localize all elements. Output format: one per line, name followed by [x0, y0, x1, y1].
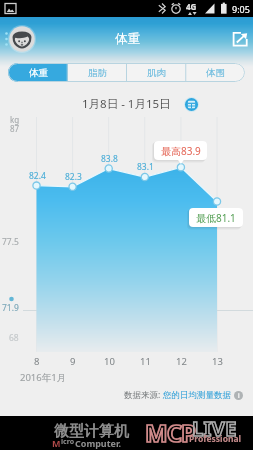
staticText: 体重 — [29, 67, 48, 79]
button[interactable]: 肌肉 — [127, 63, 186, 82]
staticText: MCP — [145, 416, 195, 449]
staticText: 4G — [186, 1, 197, 12]
staticText: 9:05 — [232, 3, 250, 15]
staticText: 11 — [140, 355, 151, 368]
staticText: 体重 — [115, 31, 140, 47]
staticText: 9 — [70, 355, 76, 368]
staticText: 13 — [212, 355, 223, 368]
button[interactable]: Share — [232, 31, 248, 47]
staticText: icro — [61, 437, 75, 447]
staticText: 最低81.1 — [196, 211, 236, 225]
button[interactable]: 体重 — [8, 63, 68, 82]
button[interactable]: Info — [234, 391, 243, 400]
staticText: 83.1 — [137, 161, 154, 173]
staticText: 体围 — [206, 67, 225, 79]
staticText: 12 — [176, 355, 187, 368]
staticText: Professional — [189, 433, 242, 445]
staticText: 肌肉 — [147, 67, 166, 79]
staticText: 83.8 — [101, 153, 118, 165]
button[interactable]: Pick date — [184, 97, 199, 112]
staticText: 87 — [10, 123, 20, 134]
button[interactable]: 体围 — [186, 63, 245, 82]
staticText: 8 — [34, 355, 40, 368]
button[interactable]: 您的日均测量数据 — [163, 390, 231, 401]
staticText: 微型计算机 — [54, 422, 129, 441]
staticText: 最高83.9 — [161, 144, 201, 158]
staticText: 数据来源: — [124, 389, 163, 401]
button[interactable]: 脂肪 — [68, 63, 127, 82]
staticText: 脂肪 — [88, 67, 107, 79]
staticText: M — [52, 437, 61, 449]
staticText: 82.4 — [29, 170, 46, 182]
button[interactable]: Profile — [8, 25, 36, 53]
staticText: 10 — [104, 355, 115, 368]
staticText: Computer. — [75, 437, 122, 449]
staticText: 2016年1月 — [20, 371, 67, 384]
staticText: 82.3 — [65, 171, 82, 183]
staticText: LIVE — [192, 415, 237, 442]
staticText: kg — [10, 114, 20, 125]
staticText: 71.9 — [2, 302, 19, 314]
staticText: 77.5 — [2, 236, 19, 248]
staticText: 68 — [9, 332, 19, 344]
staticText: 1月8日 - 1月15日 — [82, 96, 171, 112]
staticText: i — [238, 391, 240, 400]
